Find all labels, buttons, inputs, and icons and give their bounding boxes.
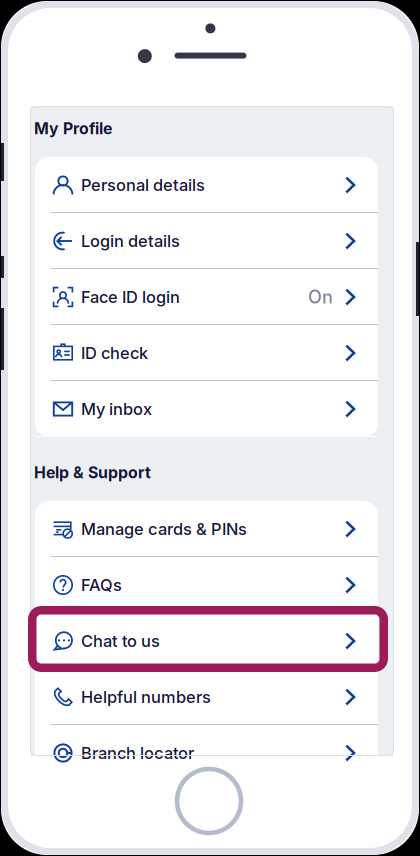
staticText: My Profile [34,119,112,138]
staticText: Login details [81,231,180,251]
staticText: Face ID login [81,287,180,307]
button[interactable]: Login details [35,213,378,269]
button[interactable]: Chat to us [35,613,378,669]
button[interactable]: ID check [35,325,378,381]
staticText: Helpful numbers [81,687,211,707]
button[interactable]: Face ID login [35,269,378,325]
button[interactable]: My inbox [35,381,378,437]
button[interactable]: Helpful numbers [35,669,378,725]
button[interactable]: Manage cards & PINs [35,501,378,557]
staticText: My inbox [81,399,152,419]
staticText: ID check [81,343,148,363]
button[interactable]: Branch locator [35,725,378,781]
staticText: On [308,286,333,308]
staticText: Manage cards & PINs [81,519,247,539]
button[interactable]: Personal details [35,157,378,213]
button[interactable]: FAQs [35,557,378,613]
staticText: Branch locator [81,743,194,763]
staticText: Personal details [81,175,205,195]
staticText: Chat to us [81,631,160,651]
staticText: FAQs [81,575,122,595]
staticText: Help & Support [34,463,151,482]
